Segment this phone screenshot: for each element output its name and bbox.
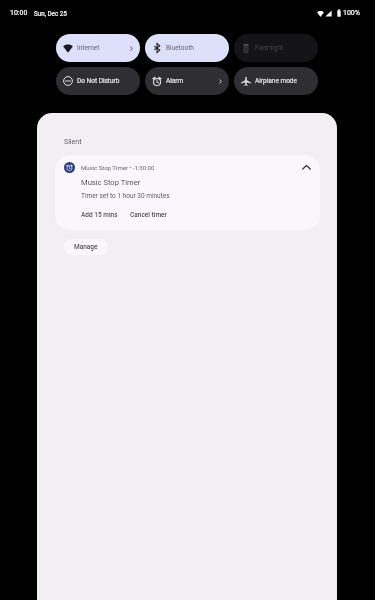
staticText: Internet [77, 44, 100, 52]
staticText: Manage [74, 243, 98, 251]
button[interactable]: Music Stop Timer • -1:30:00 [55, 155, 320, 230]
staticText: 10:00 [10, 9, 28, 17]
staticText: Music Stop Timer • -1:30:00 [81, 164, 155, 171]
staticText: Cancel timer [130, 211, 167, 219]
staticText: Flashlight [255, 44, 284, 52]
button[interactable]: Do Not Disturb [56, 67, 140, 95]
button[interactable]: Collapse notification [299, 160, 313, 174]
staticText: 100% [343, 9, 360, 17]
button[interactable]: Manage [64, 239, 108, 255]
staticText: Do Not Disturb [77, 77, 120, 85]
button[interactable]: Bluetooth [145, 34, 229, 62]
staticText: Sun, Dec 25 [34, 10, 67, 17]
button[interactable]: Airplane mode [234, 67, 318, 95]
staticText: Add 15 mins [81, 211, 118, 219]
button[interactable]: Flashlight [234, 34, 318, 62]
button[interactable]: Alarm [145, 67, 229, 95]
staticText: Bluetooth [166, 44, 194, 52]
button[interactable]: Add 15 mins [81, 211, 118, 219]
staticText: Timer set to 1 hour 30 minutes [81, 192, 170, 200]
staticText: Airplane mode [255, 77, 297, 85]
staticText: Silent [64, 138, 82, 146]
staticText: Music Stop Timer [81, 178, 141, 187]
staticText: Alarm [166, 77, 184, 85]
button[interactable]: Cancel timer [130, 211, 167, 219]
button[interactable]: Internet [56, 34, 140, 62]
